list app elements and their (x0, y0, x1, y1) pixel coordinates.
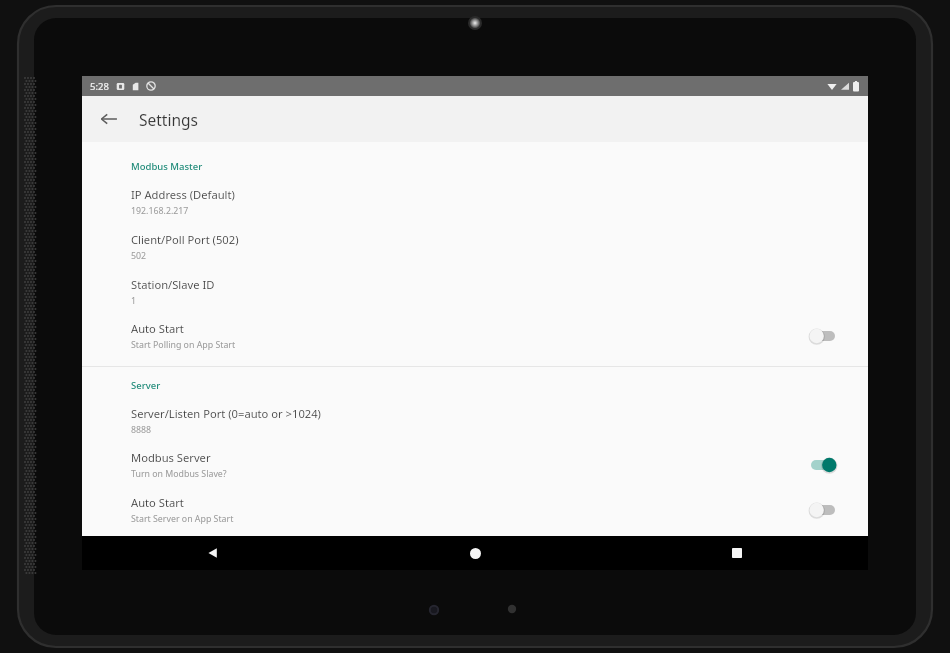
staticText: Client/Poll Port (502) (131, 232, 239, 247)
staticText: 192.168.2.217 (131, 205, 189, 217)
button[interactable]: Home (455, 536, 495, 570)
button[interactable]: Station/Slave ID (82, 268, 868, 313)
button[interactable]: Client/Poll Port (502) (82, 223, 868, 268)
button[interactable]: Modbus Server (82, 442, 868, 487)
button[interactable]: Switch off (806, 499, 840, 521)
button[interactable]: Auto Start (82, 313, 868, 358)
button[interactable]: Back (193, 536, 233, 570)
button[interactable]: Recent apps (717, 536, 757, 570)
staticText: Settings (139, 109, 198, 130)
staticText: Server/Listen Port (0=auto or >1024) (131, 406, 321, 421)
staticText: 5:28 (90, 80, 109, 93)
staticText: Turn on Modbus Slave? (131, 468, 227, 480)
staticText: Modbus Master (131, 160, 203, 173)
staticText: Auto Start (131, 495, 184, 510)
button[interactable]: Auto Start (82, 487, 868, 532)
staticText: 8888 (131, 424, 152, 436)
staticText: Station/Slave ID (131, 277, 215, 292)
button[interactable]: Switch on (806, 454, 840, 476)
staticText: 1 (131, 295, 137, 307)
staticText: 502 (131, 250, 147, 262)
staticText: IP Address (Default) (131, 187, 235, 202)
staticText: Start Polling on App Start (131, 339, 236, 351)
button[interactable]: Back (91, 101, 127, 137)
staticText: Auto Start (131, 321, 184, 336)
button[interactable]: Server/Listen Port (0=auto or >1024) (82, 397, 868, 442)
staticText: Server (131, 379, 161, 392)
staticText: Start Server on App Start (131, 513, 234, 525)
button[interactable]: IP Address (Default) (82, 178, 868, 223)
button[interactable]: Switch off (806, 325, 840, 347)
staticText: Modbus Server (131, 450, 211, 465)
